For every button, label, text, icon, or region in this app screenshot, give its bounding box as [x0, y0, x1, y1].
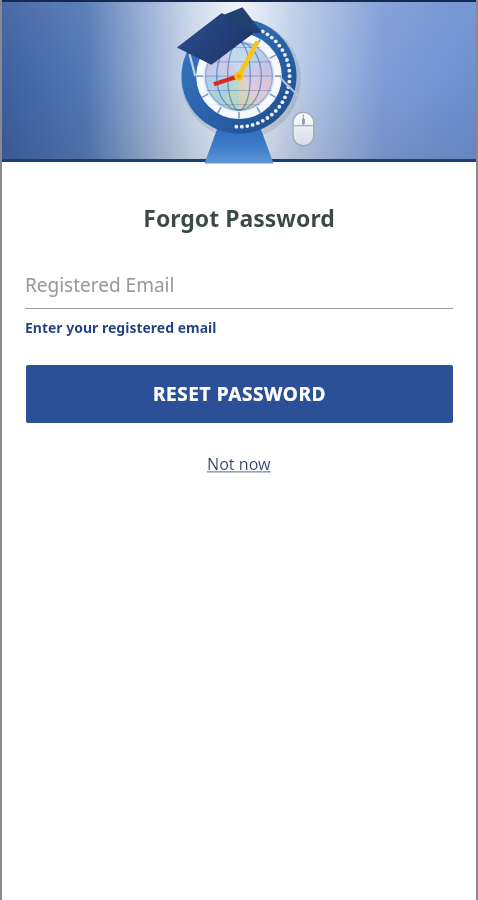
staticText: Enter your registered email — [25, 318, 217, 337]
button[interactable]: Not now — [207, 453, 271, 475]
button[interactable]: RESET PASSWORD — [26, 365, 453, 423]
staticText: RESET PASSWORD — [153, 381, 327, 407]
staticText: Forgot Password — [0, 202, 478, 233]
button[interactable]: Registered Email — [25, 261, 453, 309]
staticText: Registered Email — [25, 272, 175, 298]
staticText: Not now — [207, 453, 271, 475]
